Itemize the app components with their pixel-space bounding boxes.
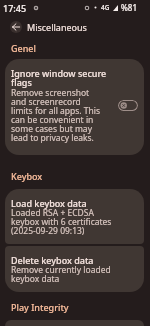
staticText: Miscellaneous xyxy=(27,21,87,33)
staticText: Play Integrity xyxy=(11,301,69,313)
staticText: Genel xyxy=(11,42,36,54)
staticText: Keybox xyxy=(11,170,43,182)
button[interactable]: Delete keybox data xyxy=(5,246,144,292)
button[interactable]: Back xyxy=(10,21,22,33)
button[interactable]: Load keybox data xyxy=(5,189,144,244)
staticText: Remove currently loaded keybox data xyxy=(11,264,123,285)
staticText: Loaded RSA + ECDSA keybox with 6 certifi… xyxy=(11,207,123,237)
staticText: Delete keybox data xyxy=(11,254,123,266)
button[interactable]: Ignore window secure flags xyxy=(5,59,144,155)
staticText: 17:45 xyxy=(3,2,27,14)
staticText: %81 xyxy=(121,2,137,13)
staticText: Load keybox data xyxy=(11,197,123,209)
staticText: Remove screenshot and screenrecord limit… xyxy=(11,87,103,144)
button[interactable] xyxy=(5,320,144,326)
staticText: 4G xyxy=(101,3,110,12)
button[interactable]: Ignore window secure flags toggle xyxy=(118,100,138,111)
staticText: Ignore window secure flags xyxy=(11,67,109,89)
